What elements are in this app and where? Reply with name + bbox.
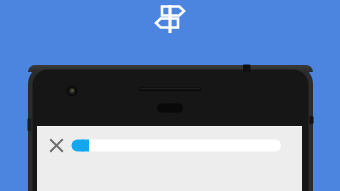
other: Close — [0, 0, 340, 191]
button[interactable]: Loading progress — [0, 0, 340, 191]
other: Signpost logo — [0, 0, 340, 191]
